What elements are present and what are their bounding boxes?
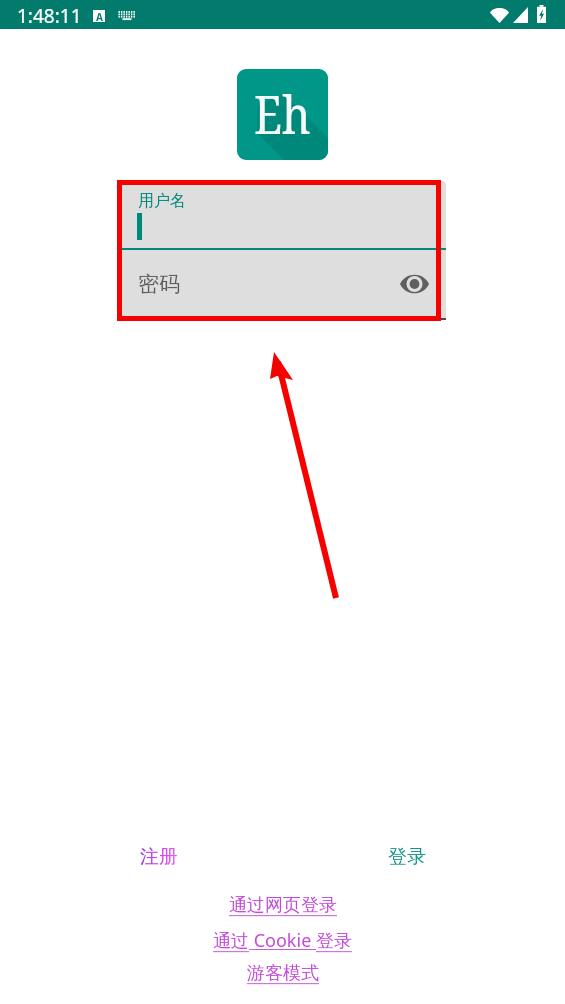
button[interactable]: 登录	[388, 845, 426, 869]
button[interactable]: 游客模式	[247, 962, 319, 985]
staticText: 登录	[388, 845, 426, 869]
staticText: A	[96, 10, 103, 22]
staticText: 用户名	[138, 191, 186, 211]
staticText: 密码	[138, 271, 180, 297]
button[interactable]: 通过 Cookie 登录	[213, 928, 352, 953]
button[interactable]: 注册	[140, 845, 178, 869]
staticText: Eh	[254, 77, 311, 149]
button[interactable]: 通过网页登录	[229, 894, 337, 917]
staticText: 1:48:11	[17, 3, 82, 29]
button[interactable]: Show password	[398, 268, 430, 300]
button[interactable]: 密码	[119, 250, 446, 318]
staticText: 注册	[140, 845, 178, 869]
button[interactable]: 用户名	[119, 181, 446, 248]
